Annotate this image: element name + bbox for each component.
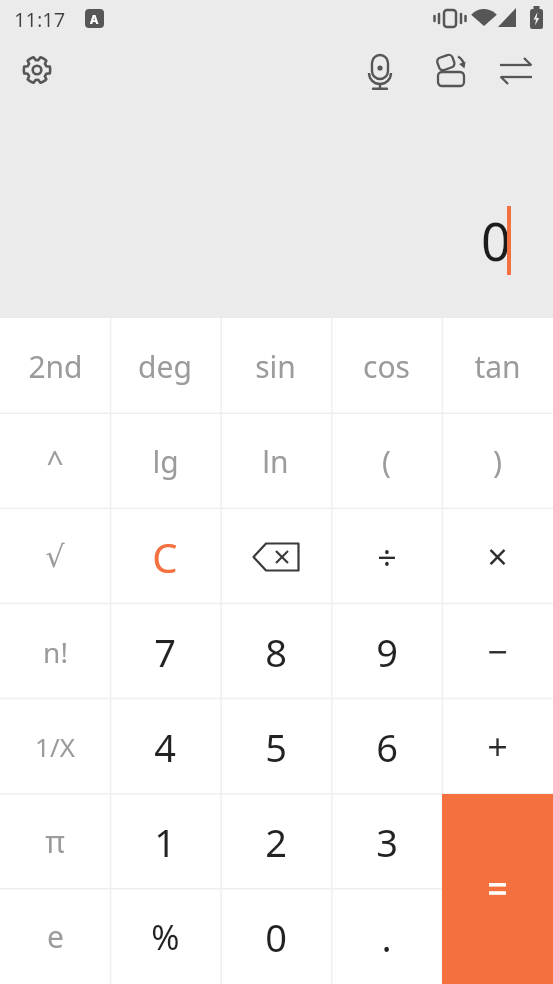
staticText: A	[90, 11, 99, 27]
staticText: 2	[265, 816, 287, 868]
button[interactable]	[19, 52, 55, 88]
button[interactable]: n!	[0, 604, 110, 699]
staticText: n!	[43, 633, 68, 671]
button[interactable]: tan	[442, 318, 553, 414]
button[interactable]: ^	[0, 414, 110, 509]
button[interactable]: 6	[331, 699, 442, 794]
button[interactable]: .	[331, 889, 442, 984]
button[interactable]: deg	[110, 318, 220, 414]
button[interactable]: %	[110, 889, 220, 984]
staticText: 1/X	[35, 729, 75, 764]
staticText: −	[487, 627, 508, 676]
button[interactable]: √	[0, 509, 110, 604]
button[interactable]: 8	[220, 604, 331, 699]
staticText: ^	[46, 441, 64, 482]
staticText: 0	[481, 205, 511, 276]
button[interactable]	[498, 55, 534, 87]
staticText: 7	[154, 626, 176, 678]
staticText: π	[45, 821, 65, 862]
staticText: C	[152, 530, 178, 584]
staticText: 0	[265, 911, 287, 963]
staticText: 4	[154, 721, 176, 773]
button[interactable]: 1/X	[0, 699, 110, 794]
button[interactable]: )	[442, 414, 553, 509]
button[interactable]: e	[0, 889, 110, 984]
staticText: 5	[265, 721, 287, 773]
staticText: %	[151, 914, 180, 960]
staticText: +	[487, 722, 508, 771]
button[interactable]	[362, 51, 398, 91]
staticText: 6	[376, 721, 398, 773]
button[interactable]: +	[442, 699, 553, 794]
button[interactable]: 9	[331, 604, 442, 699]
button[interactable]: lg	[110, 414, 220, 509]
staticText: 8	[265, 626, 287, 678]
button[interactable]: −	[442, 604, 553, 699]
staticText: 3	[376, 816, 398, 868]
button[interactable]: π	[0, 794, 110, 889]
button[interactable]: sin	[220, 318, 331, 414]
button[interactable]: ×	[442, 509, 553, 604]
staticText: .	[381, 911, 392, 963]
staticText: 11:17	[14, 6, 66, 33]
button[interactable]: cos	[331, 318, 442, 414]
staticText: ×	[487, 532, 508, 581]
staticText: cos	[363, 346, 410, 387]
button[interactable]: 5	[220, 699, 331, 794]
button[interactable]: 4	[110, 699, 220, 794]
button[interactable]: 1	[110, 794, 220, 889]
staticText: 9	[376, 626, 398, 678]
staticText: 1	[154, 816, 176, 868]
staticText: ln	[262, 441, 289, 482]
staticText: √	[45, 539, 65, 574]
button[interactable]: 2	[220, 794, 331, 889]
button[interactable]: 2nd	[0, 318, 110, 414]
staticText: e	[47, 916, 64, 957]
staticText: lg	[152, 441, 179, 482]
button[interactable]	[434, 53, 470, 89]
button[interactable]: (	[331, 414, 442, 509]
staticText: )	[493, 441, 502, 482]
button[interactable]: 0	[220, 889, 331, 984]
staticText: 2nd	[28, 346, 83, 387]
button[interactable]	[442, 794, 553, 984]
button[interactable]: ÷	[331, 509, 442, 604]
staticText: sin	[255, 346, 296, 387]
button[interactable]: ln	[220, 414, 331, 509]
button[interactable]	[220, 509, 331, 604]
button[interactable]: C	[110, 509, 220, 604]
staticText: tan	[474, 346, 521, 387]
staticText: deg	[138, 346, 192, 387]
staticText: ÷	[377, 534, 397, 580]
button[interactable]: 7	[110, 604, 220, 699]
button[interactable]: 3	[331, 794, 442, 889]
staticText: (	[382, 441, 391, 482]
